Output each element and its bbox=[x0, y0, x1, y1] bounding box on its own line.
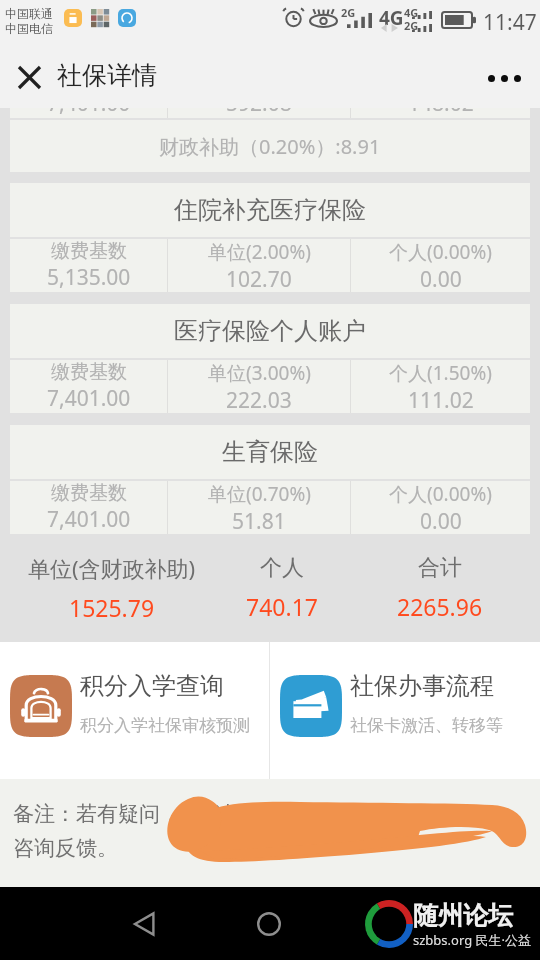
staticText: 备注：若有疑问，请拨打咨询电话 bbox=[13, 801, 328, 827]
staticText: 102.70 bbox=[226, 265, 292, 292]
staticText: 0.00 bbox=[420, 507, 462, 534]
staticText: 积分入学社保审核预测 bbox=[80, 715, 250, 736]
staticText: 单位(2.00%) bbox=[208, 239, 311, 265]
staticText: 单位(3.00%) bbox=[208, 360, 311, 386]
staticText: 咨询反馈。 bbox=[13, 835, 118, 861]
staticText: 住院补充医疗保险 bbox=[174, 195, 366, 225]
button[interactable]: 社保办事流程 bbox=[270, 642, 540, 779]
staticText: 医疗保险个人账户 bbox=[174, 316, 366, 346]
staticText: 7,401.00 bbox=[47, 505, 131, 534]
staticText: 1525.79 bbox=[69, 592, 155, 623]
staticText: 个人(1.50%) bbox=[389, 360, 492, 386]
staticText: 11:47 bbox=[483, 8, 537, 37]
staticText: 222.03 bbox=[226, 386, 292, 413]
staticText: 592.08 bbox=[226, 108, 292, 118]
staticText: 2G bbox=[341, 5, 356, 20]
staticText: 缴费基数 bbox=[51, 360, 127, 384]
staticText: 个人(0.00%) bbox=[389, 481, 492, 507]
button[interactable]: 积分入学查询 bbox=[0, 642, 269, 779]
button[interactable]: Home bbox=[247, 902, 291, 946]
staticText: 生育保险 bbox=[222, 437, 318, 467]
staticText: 7,401.00 bbox=[47, 384, 131, 413]
staticText: 740.17 bbox=[246, 591, 318, 622]
staticText: 中国联通 bbox=[5, 6, 53, 21]
staticText: 148.02 bbox=[408, 108, 474, 118]
staticText: 单位(含财政补助) bbox=[28, 553, 196, 583]
staticText: szbbs.org 民生·公益 bbox=[413, 931, 532, 949]
staticText: 5,135.00 bbox=[47, 263, 131, 292]
staticText: 缴费基数 bbox=[51, 481, 127, 505]
staticText: 0.00 bbox=[420, 265, 462, 292]
staticText: 社保办事流程 bbox=[350, 671, 494, 701]
staticText: 51.81 bbox=[232, 507, 286, 534]
staticText: 个人 bbox=[260, 554, 304, 582]
staticText: 单位(0.70%) bbox=[208, 481, 311, 507]
staticText: 社保卡激活、转移等 bbox=[350, 715, 503, 736]
button[interactable]: Back bbox=[123, 902, 167, 946]
staticText: 缴费基数 bbox=[51, 239, 127, 263]
button[interactable]: Close bbox=[7, 55, 51, 99]
staticText: 合计 bbox=[418, 554, 462, 582]
staticText: 积分入学查询 bbox=[80, 671, 224, 701]
staticText: 4G bbox=[379, 5, 404, 31]
staticText: 7,401.00 bbox=[47, 108, 131, 118]
staticText: 个人(0.00%) bbox=[389, 239, 492, 265]
staticText: 2265.96 bbox=[397, 591, 483, 622]
staticText: 社保详情 bbox=[57, 60, 157, 91]
staticText: 财政补助（0.20%）:8.91 bbox=[159, 133, 381, 160]
staticText: 中国电信 bbox=[5, 21, 53, 36]
staticText: 4G bbox=[404, 5, 419, 20]
button[interactable]: More options bbox=[476, 50, 532, 106]
staticText: 111.02 bbox=[408, 386, 474, 413]
staticText: 2G bbox=[404, 18, 419, 33]
staticText: 随州论坛 bbox=[413, 900, 513, 931]
